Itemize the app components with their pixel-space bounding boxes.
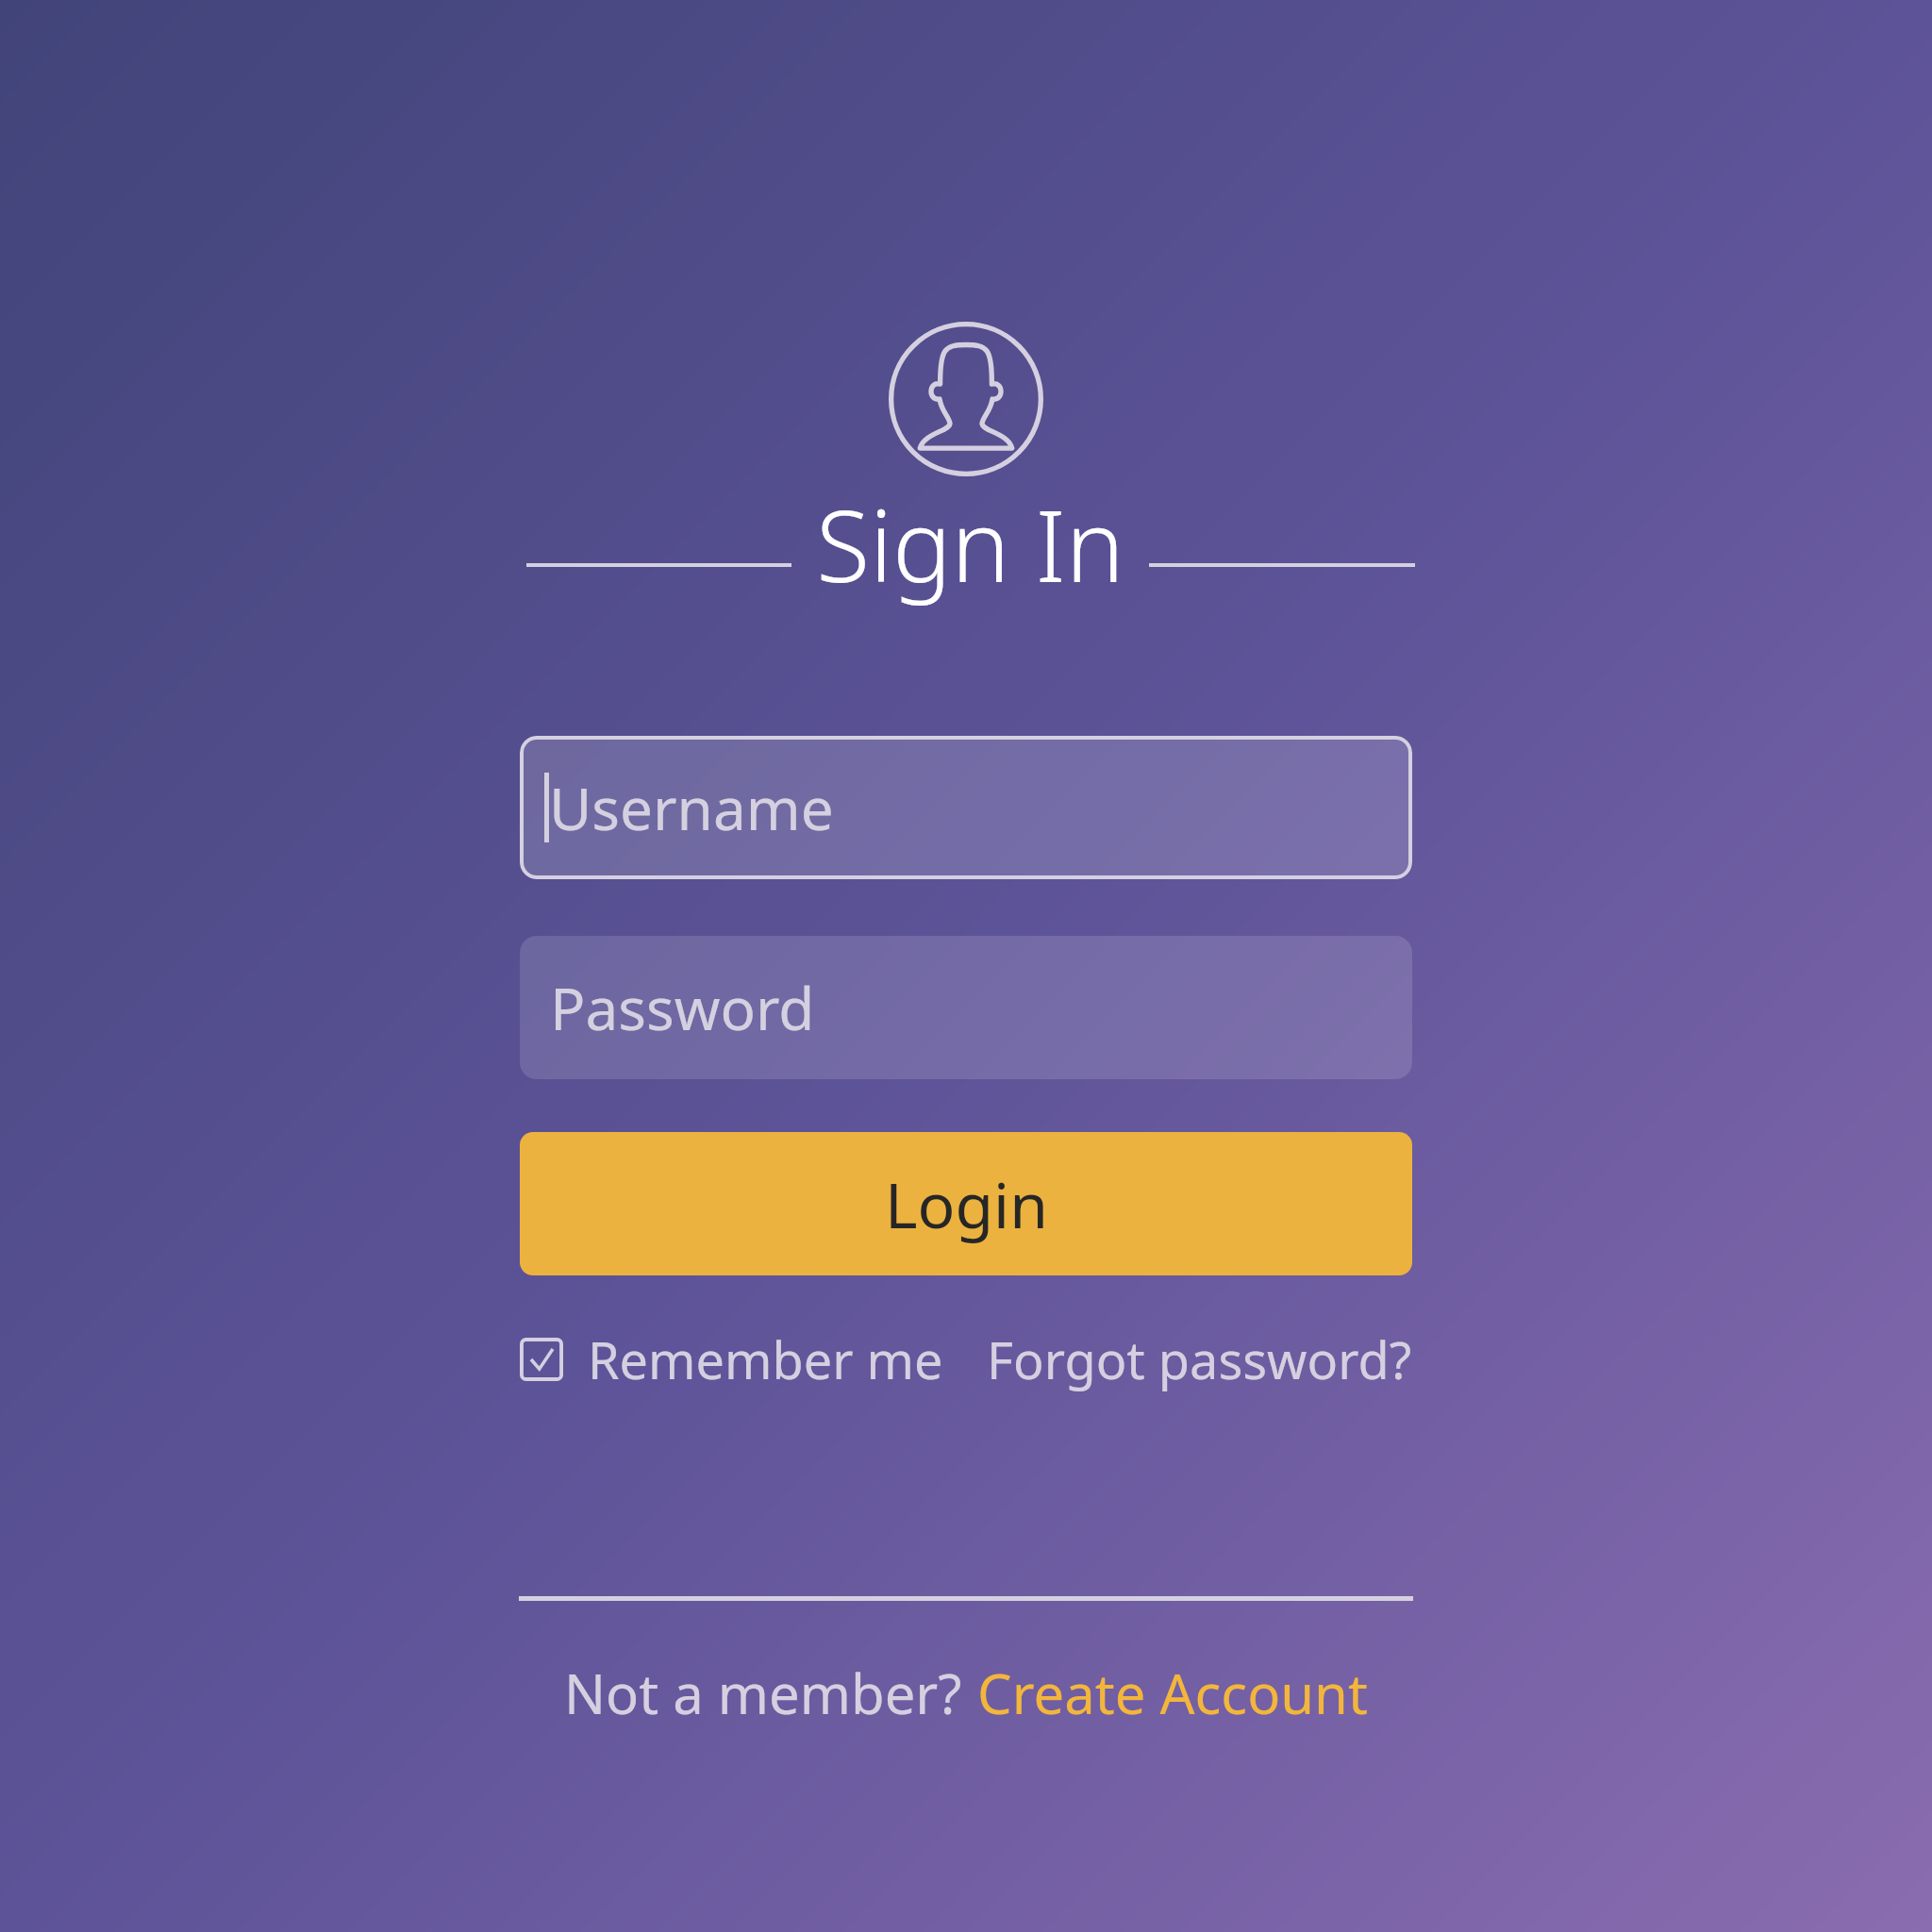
button[interactable]: Username <box>520 736 1412 879</box>
other: User avatar <box>888 321 1044 477</box>
staticText: Not a member? <box>564 1656 962 1730</box>
staticText: Login <box>885 1161 1048 1246</box>
staticText: Remember me <box>588 1324 943 1394</box>
button[interactable]: Password <box>520 936 1412 1079</box>
staticText: Sign In <box>816 477 1124 611</box>
button[interactable]: Remember me <box>520 1324 943 1394</box>
staticText: Password <box>550 968 815 1047</box>
button[interactable]: Forgot password? <box>987 1324 1412 1394</box>
staticText: Username <box>549 768 834 847</box>
button[interactable]: Login <box>520 1132 1412 1275</box>
button[interactable]: Create Account <box>977 1656 1368 1730</box>
